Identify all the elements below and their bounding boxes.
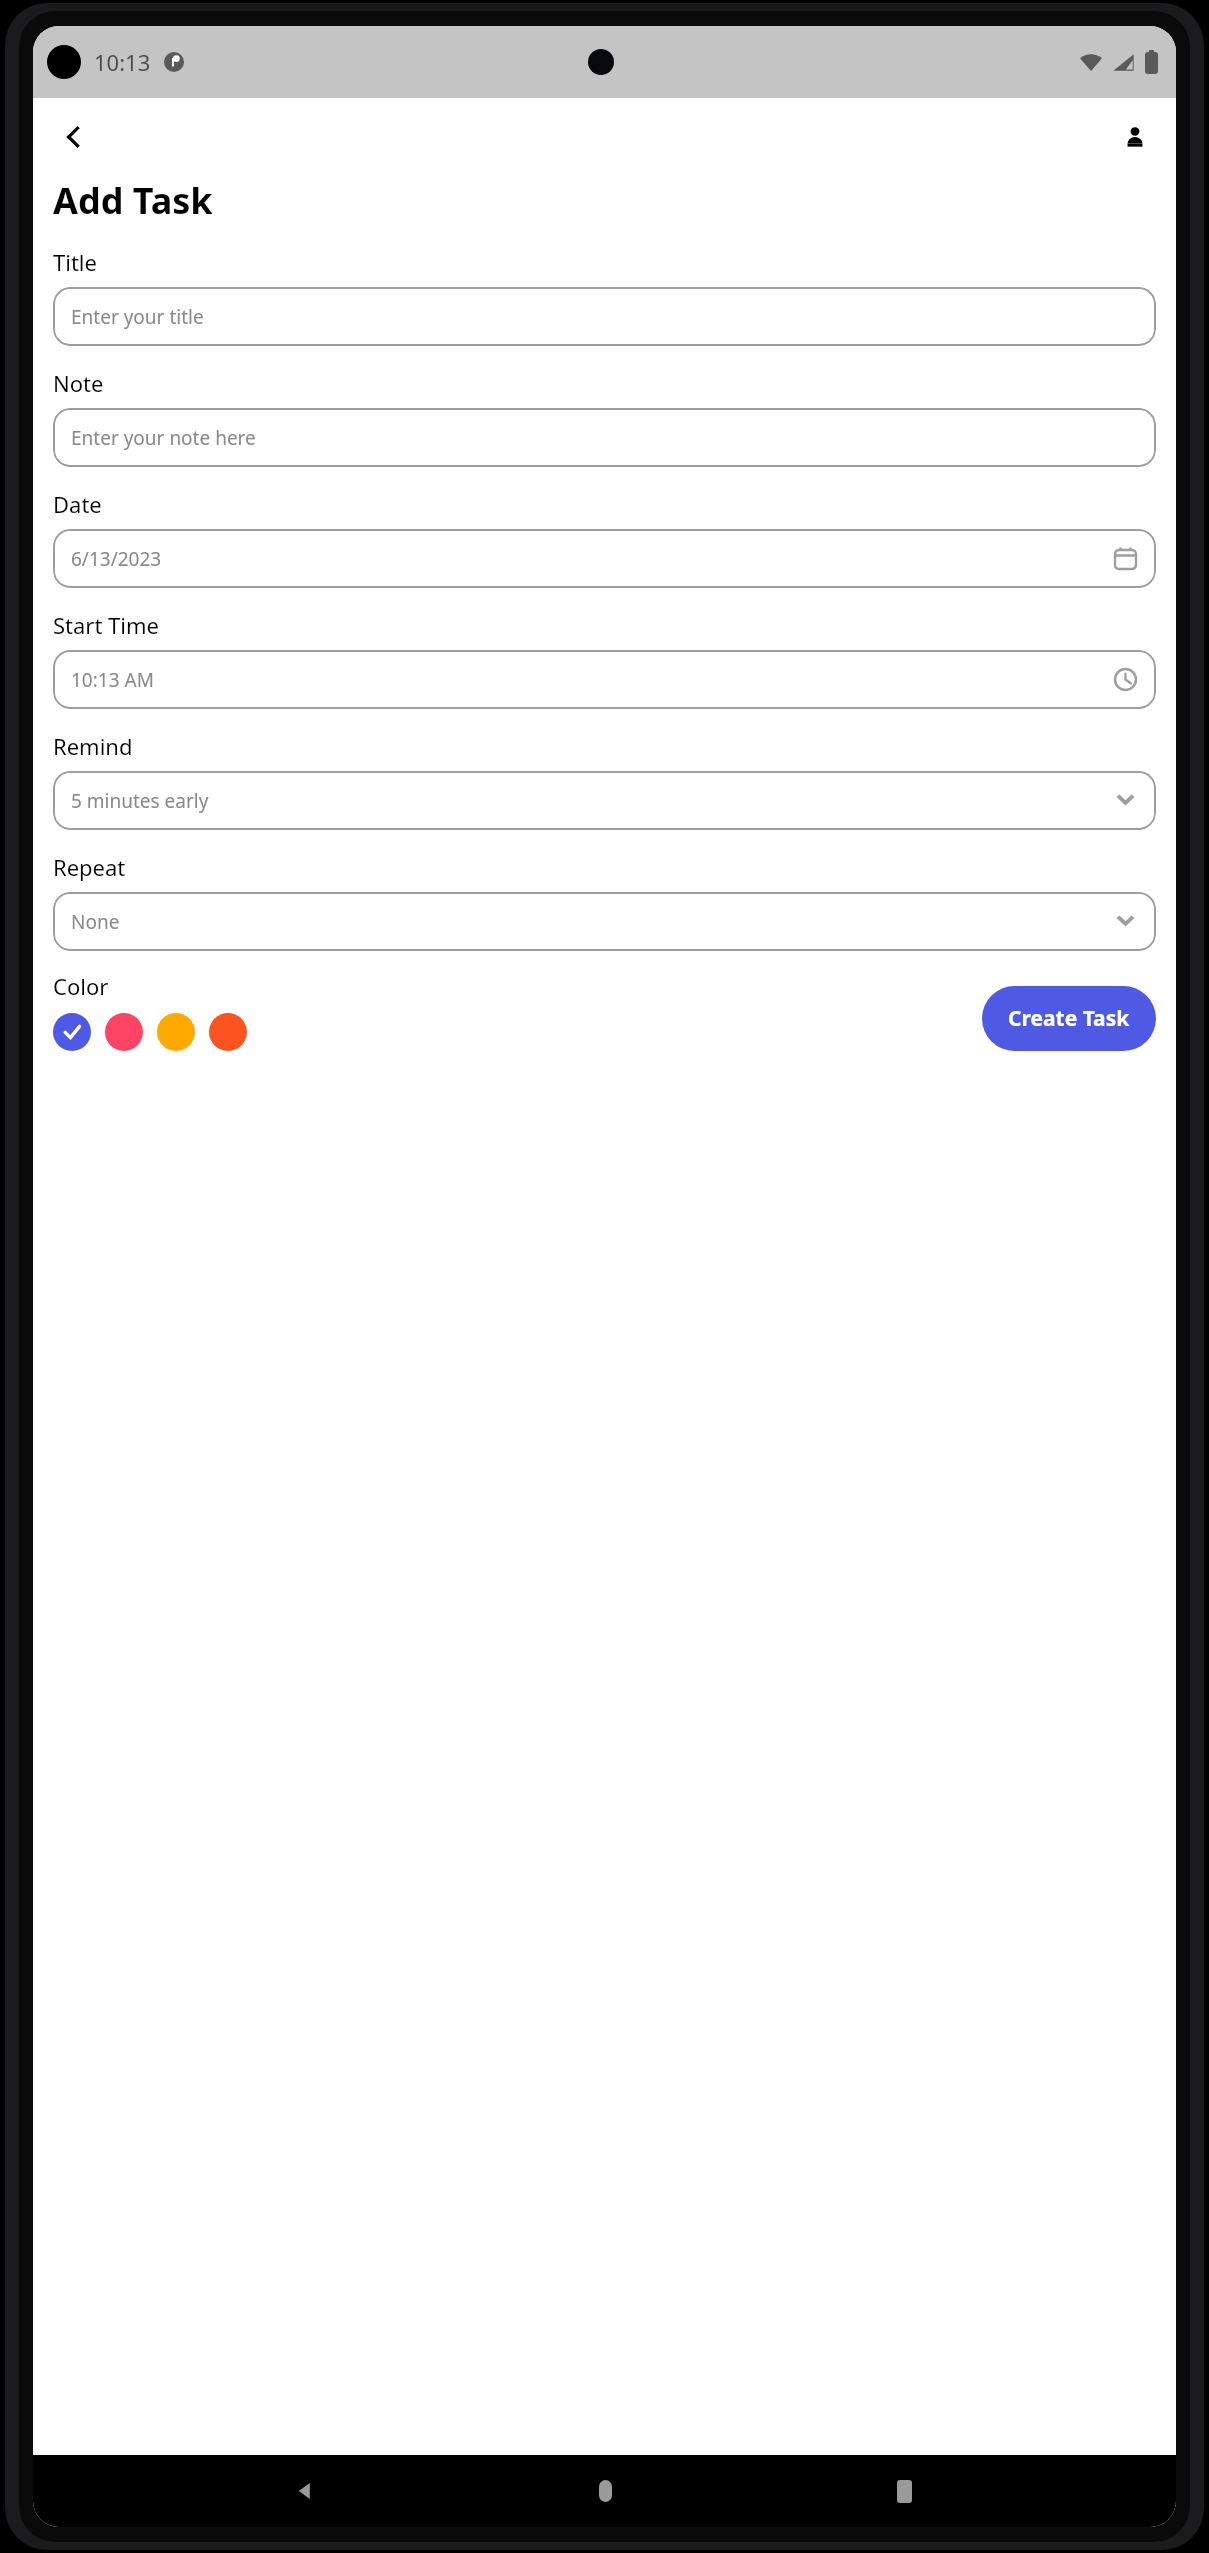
staticText: Note xyxy=(53,368,104,398)
staticText: Title xyxy=(53,247,97,277)
button[interactable]: Back xyxy=(53,116,95,158)
staticText: Enter your note here xyxy=(71,425,1138,451)
staticText: 6/13/2023 xyxy=(71,546,1113,572)
button[interactable]: Back xyxy=(277,2463,333,2519)
staticText: Repeat xyxy=(53,852,126,882)
staticText: Add Task xyxy=(53,176,213,225)
button[interactable]: 5 minutes early xyxy=(53,771,1156,830)
button[interactable]: 6/13/2023 xyxy=(53,529,1156,588)
button[interactable]: Enter your note here xyxy=(53,408,1156,467)
button[interactable]: None xyxy=(53,892,1156,951)
staticText: None xyxy=(71,909,1113,935)
button[interactable]: Profile xyxy=(1114,116,1156,158)
staticText: 10:13 xyxy=(94,47,151,77)
staticText: Create Task xyxy=(1008,1004,1130,1033)
button[interactable]: Color option xyxy=(157,1013,195,1051)
button[interactable]: Enter your title xyxy=(53,287,1156,346)
button[interactable]: Color option xyxy=(209,1013,247,1051)
staticText: 10:13 AM xyxy=(71,667,1113,693)
button[interactable]: Color option xyxy=(53,1013,91,1051)
staticText: Remind xyxy=(53,731,133,761)
staticText: Color xyxy=(53,971,109,1001)
staticText: 5 minutes early xyxy=(71,788,1113,814)
staticText: Start Time xyxy=(53,610,159,640)
staticText: Date xyxy=(53,489,102,519)
button[interactable]: Color option xyxy=(105,1013,143,1051)
button[interactable]: Create Task xyxy=(982,986,1156,1051)
staticText: Enter your title xyxy=(71,304,1138,330)
button[interactable]: Home xyxy=(577,2463,633,2519)
button[interactable]: Recent apps xyxy=(876,2463,932,2519)
button[interactable]: 10:13 AM xyxy=(53,650,1156,709)
